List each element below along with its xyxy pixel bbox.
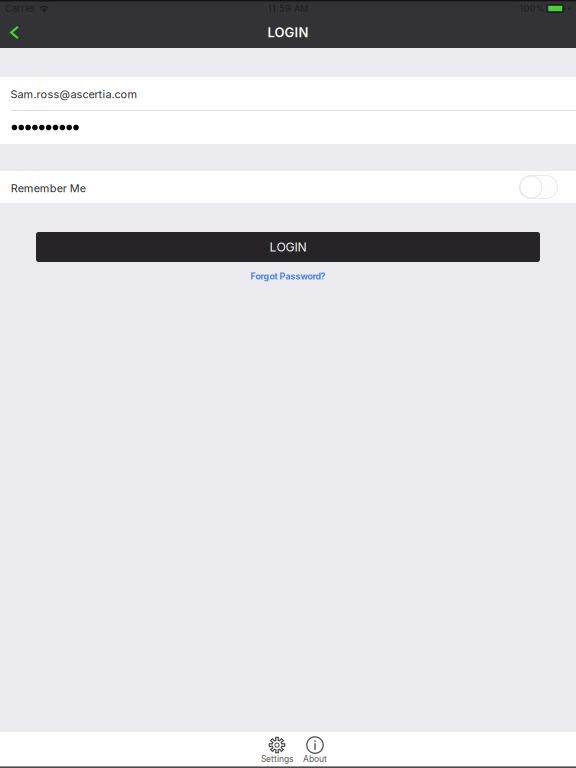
- staticText: LOGIN: [267, 25, 308, 40]
- button[interactable]: Back: [0, 20, 32, 48]
- button[interactable]: About: [296, 732, 334, 768]
- staticText: 11:59 AM: [268, 3, 308, 14]
- staticText: Remember Me: [11, 182, 86, 195]
- staticText: 100%: [519, 3, 544, 14]
- button[interactable]: Forgot Password?: [244, 269, 331, 284]
- staticText: About: [303, 754, 327, 764]
- staticText: Settings: [261, 754, 293, 764]
- staticText: LOGIN: [269, 240, 306, 254]
- staticText: Carrier: [5, 3, 35, 14]
- button[interactable]: Remember Me: [0, 171, 576, 203]
- staticText: Sam.ross@ascertia.com: [11, 88, 138, 101]
- staticText: Forgot Password?: [250, 271, 325, 282]
- button[interactable]: LOGIN: [36, 232, 540, 262]
- button[interactable]: Settings: [258, 732, 296, 768]
